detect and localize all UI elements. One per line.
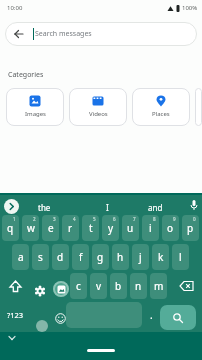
- staticText: v: [96, 279, 102, 293]
- staticText: 2: [33, 216, 36, 222]
- button[interactable]: Videos: [69, 88, 127, 126]
- staticText: 0: [193, 216, 196, 222]
- staticText: m: [154, 279, 164, 293]
- button[interactable]: Places: [132, 88, 190, 126]
- button[interactable]: [8, 335, 16, 341]
- button[interactable]: [66, 302, 142, 328]
- staticText: t: [89, 221, 93, 235]
- button[interactable]: [4, 199, 19, 214]
- staticText: Places: [152, 110, 170, 118]
- button[interactable]: l: [172, 244, 189, 270]
- button[interactable]: [52, 310, 68, 326]
- staticText: s: [38, 250, 43, 264]
- staticText: o: [167, 221, 174, 235]
- staticText: i: [149, 221, 152, 235]
- staticText: l: [179, 250, 182, 264]
- staticText: f: [79, 250, 83, 264]
- button[interactable]: a: [12, 244, 29, 270]
- staticText: 8: [153, 216, 156, 222]
- staticText: d: [57, 250, 64, 264]
- staticText: 4: [73, 216, 76, 222]
- button[interactable]: g: [92, 244, 109, 270]
- button[interactable]: f: [72, 244, 89, 270]
- button[interactable]: m: [150, 273, 167, 299]
- button[interactable]: s: [32, 244, 49, 270]
- button[interactable]: [195, 88, 202, 126]
- staticText: q: [7, 221, 14, 235]
- button[interactable]: t: [82, 215, 99, 241]
- button[interactable]: and: [148, 202, 163, 213]
- staticText: e: [48, 221, 54, 235]
- staticText: Search messages: [35, 29, 92, 39]
- button[interactable]: .: [146, 302, 156, 328]
- staticText: w: [27, 221, 35, 235]
- staticText: 3: [53, 216, 56, 222]
- staticText: 7: [133, 216, 136, 222]
- button[interactable]: c: [70, 273, 87, 299]
- button[interactable]: [14, 29, 24, 39]
- button[interactable]: Images: [6, 88, 64, 126]
- staticText: Videos: [89, 110, 108, 118]
- staticText: r: [68, 221, 73, 235]
- staticText: ?123: [7, 310, 24, 320]
- button[interactable]: b: [110, 273, 127, 299]
- button[interactable]: y: [102, 215, 119, 241]
- staticText: k: [158, 250, 164, 264]
- button[interactable]: [32, 283, 48, 299]
- staticText: b: [115, 279, 122, 293]
- button[interactable]: [160, 305, 196, 330]
- button[interactable]: [188, 198, 200, 214]
- button[interactable]: e: [42, 215, 59, 241]
- button[interactable]: d: [52, 244, 69, 270]
- staticText: 9: [173, 216, 176, 222]
- staticText: 10:00: [7, 4, 23, 12]
- staticText: n: [135, 279, 142, 293]
- staticText: a: [18, 250, 24, 264]
- staticText: 1: [13, 216, 16, 222]
- staticText: u: [127, 221, 134, 235]
- button[interactable]: [1, 273, 29, 299]
- staticText: .: [150, 308, 153, 322]
- button[interactable]: j: [132, 244, 149, 270]
- staticText: c: [76, 279, 81, 293]
- button[interactable]: k: [152, 244, 169, 270]
- button[interactable]: Search messages: [5, 22, 197, 46]
- button[interactable]: i: [142, 215, 159, 241]
- staticText: 6: [113, 216, 116, 222]
- button[interactable]: o: [162, 215, 179, 241]
- button[interactable]: v: [90, 273, 107, 299]
- button[interactable]: p: [182, 215, 199, 241]
- staticText: y: [108, 221, 114, 235]
- button[interactable]: h: [112, 244, 129, 270]
- button[interactable]: q: [2, 215, 19, 241]
- staticText: g: [97, 250, 104, 264]
- button[interactable]: r: [62, 215, 79, 241]
- button[interactable]: the: [38, 202, 51, 213]
- button[interactable]: w: [22, 215, 39, 241]
- button[interactable]: u: [122, 215, 139, 241]
- staticText: 100%: [182, 4, 198, 12]
- staticText: j: [139, 250, 142, 264]
- button[interactable]: n: [130, 273, 147, 299]
- staticText: p: [187, 221, 194, 235]
- button[interactable]: [171, 273, 201, 299]
- button[interactable]: I: [106, 202, 109, 213]
- staticText: 5: [93, 216, 96, 222]
- button[interactable]: ?123: [1, 302, 29, 328]
- staticText: Images: [25, 110, 46, 118]
- staticText: h: [117, 250, 124, 264]
- staticText: Categories: [8, 70, 44, 80]
- button[interactable]: [53, 281, 69, 297]
